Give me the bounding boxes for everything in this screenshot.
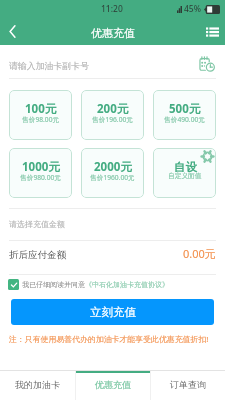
staticText: 500元 bbox=[169, 101, 201, 117]
staticText: 注：只有使用易善代办的加油卡才能享受此优惠充值折扣! bbox=[9, 334, 209, 345]
staticText: 订单查询 bbox=[170, 379, 206, 390]
staticText: 11:20 bbox=[101, 3, 123, 15]
staticText: 售价980.00元 bbox=[20, 173, 61, 182]
staticText: 100元 bbox=[25, 101, 57, 117]
button[interactable]: 500元 bbox=[153, 90, 216, 140]
button[interactable]: 订单查询 bbox=[151, 371, 225, 400]
staticText: 售价98.00元 bbox=[22, 115, 60, 124]
staticText: 请输入加油卡副卡号 bbox=[9, 60, 196, 71]
button[interactable]: 200元 bbox=[81, 90, 144, 140]
button[interactable]: Menu bbox=[199, 18, 225, 45]
button[interactable]: 我的加油卡 bbox=[0, 371, 75, 400]
button[interactable]: Recharge history bbox=[196, 53, 218, 75]
staticText: 1000元 bbox=[22, 159, 60, 175]
staticText: 自设 bbox=[174, 160, 197, 174]
button[interactable]: 优惠充值 bbox=[76, 371, 150, 400]
staticText: 0.00元 bbox=[183, 246, 216, 261]
staticText: 200元 bbox=[97, 101, 129, 117]
staticText: 售价1960.00元 bbox=[90, 173, 135, 182]
staticText: 折后应付金额 bbox=[9, 249, 183, 261]
staticText: 2000元 bbox=[94, 159, 132, 175]
staticText: 自定义面值 bbox=[168, 172, 202, 180]
staticText: 45% bbox=[184, 3, 201, 15]
staticText: 我已仔细阅读并同意 bbox=[22, 280, 85, 289]
button[interactable]: 100元 bbox=[9, 90, 72, 140]
staticText: 售价490.00元 bbox=[164, 115, 205, 124]
button[interactable]: Back bbox=[0, 18, 24, 45]
staticText: 优惠充值 bbox=[95, 379, 131, 390]
button[interactable]: 我已仔细阅读并同意 bbox=[8, 275, 225, 294]
staticText: 《中石化加油卡充值协议》 bbox=[85, 280, 169, 289]
button[interactable]: 2000元 bbox=[81, 148, 144, 198]
staticText: 优惠充值 bbox=[91, 26, 135, 40]
button[interactable]: 自设 bbox=[153, 148, 216, 198]
staticText: 我的加油卡 bbox=[15, 379, 60, 390]
staticText: 售价196.00元 bbox=[92, 115, 133, 124]
button[interactable]: 立刻充值 bbox=[11, 299, 214, 325]
button[interactable]: 1000元 bbox=[9, 148, 72, 198]
staticText: 请选择充值金额 bbox=[9, 219, 65, 229]
staticText: 立刻充值 bbox=[90, 305, 136, 319]
